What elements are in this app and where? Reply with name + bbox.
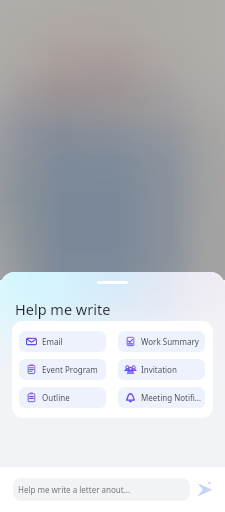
button[interactable]: Email [19, 331, 106, 352]
button[interactable]: Event Program [19, 359, 106, 380]
staticText: Work Summary [141, 336, 199, 347]
button[interactable]: Send [195, 477, 217, 501]
staticText: Help me write a letter anout... [18, 484, 131, 495]
button[interactable]: Work Summary [118, 331, 205, 352]
button[interactable]: Invitation [118, 359, 205, 380]
staticText: Help me write [15, 299, 111, 319]
staticText: Invitation [141, 364, 177, 375]
staticText: Event Program [42, 364, 98, 375]
staticText: Outline [42, 392, 70, 403]
button[interactable]: Meeting Notification [118, 387, 205, 408]
staticText: Meeting Notification [141, 392, 205, 403]
button[interactable]: Help me write a letter anout... [13, 478, 190, 501]
button[interactable]: Outline [19, 387, 106, 408]
staticText: Email [42, 336, 63, 347]
